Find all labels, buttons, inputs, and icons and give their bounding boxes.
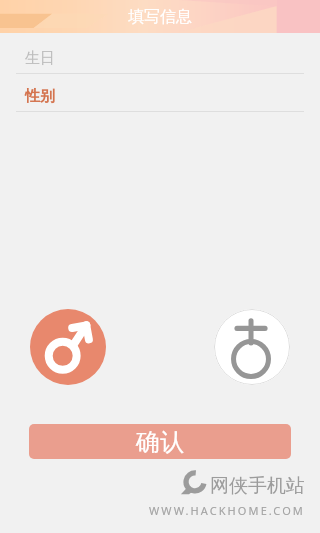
staticText: WWW.HACKHOME.COM [149, 503, 305, 518]
button[interactable]: 性别 [0, 74, 320, 111]
button[interactable]: 生日 [0, 33, 320, 73]
staticText: 生日 [25, 49, 55, 68]
staticText: 确认 [136, 427, 184, 457]
button[interactable]: Female [214, 309, 290, 385]
button[interactable]: 确认 [29, 424, 291, 459]
staticText: 填写信息 [128, 7, 192, 27]
staticText: 网侠手机站 [210, 474, 305, 498]
button[interactable]: Male [30, 309, 106, 385]
staticText: 性别 [25, 87, 55, 106]
